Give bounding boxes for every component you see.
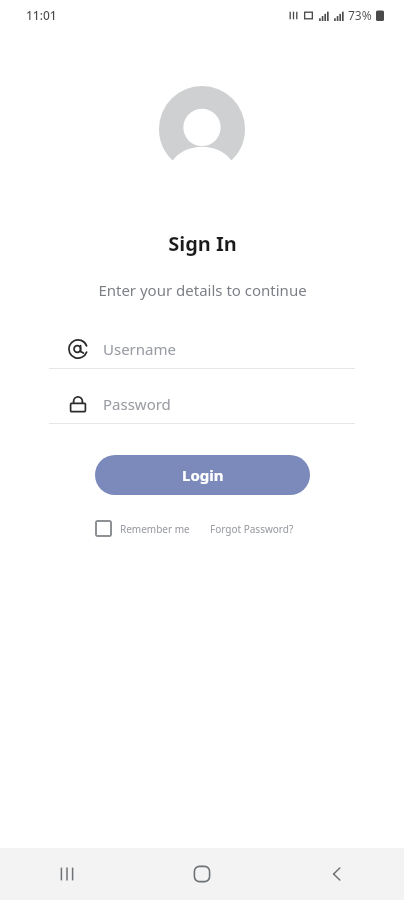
staticText: Sign In (168, 230, 237, 257)
button[interactable]: Login (95, 455, 310, 495)
staticText: Remember me (120, 522, 190, 536)
button[interactable]: Recents (0, 848, 134, 900)
staticText: Enter your details to continue (98, 280, 307, 300)
staticText: Login (182, 465, 224, 485)
other: Username (68, 339, 88, 359)
button[interactable]: Username (49, 330, 355, 369)
button[interactable]: Password (49, 385, 355, 424)
staticText: Username (103, 339, 176, 359)
staticText: Password (103, 394, 171, 414)
staticText: 11:01 (26, 7, 57, 23)
staticText: Forgot Password? (210, 522, 294, 536)
button[interactable]: Forgot Password? (210, 522, 294, 536)
button[interactable]: Remember me (95, 520, 190, 537)
button[interactable]: Home (134, 848, 269, 900)
other: Password (68, 394, 88, 414)
button[interactable]: Back (269, 848, 404, 900)
staticText: 73% (348, 7, 372, 23)
